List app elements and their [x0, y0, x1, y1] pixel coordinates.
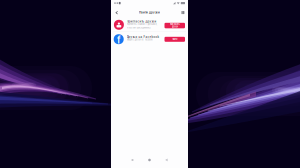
staticText: Найти друзей [139, 11, 160, 14]
staticText: Пригласить друзей [127, 20, 157, 23]
button[interactable]: Пригласить [111, 18, 131, 23]
button[interactable]: f [111, 33, 188, 45]
staticText: друзей [172, 25, 178, 28]
button[interactable]: Домой [141, 156, 158, 164]
button[interactable]: Пригласить друзей [111, 18, 188, 31]
staticText: Друзья на Facebook [127, 35, 160, 39]
staticText: Найти [172, 38, 177, 40]
button[interactable]: Назад [158, 156, 175, 164]
button[interactable]: Недавние [124, 156, 141, 164]
button[interactable]: Назад [111, 8, 119, 17]
staticText: f [117, 34, 121, 46]
staticText: Поделитесь ссылкой с друзьями, [127, 23, 158, 25]
button[interactable]: Найти [111, 33, 131, 38]
button[interactable]: Контакты [111, 8, 119, 16]
staticText: чтобы они присоединились [127, 27, 151, 29]
staticText: Найдите друзей из Facebook [127, 38, 153, 41]
staticText: Пригласить [170, 23, 180, 26]
